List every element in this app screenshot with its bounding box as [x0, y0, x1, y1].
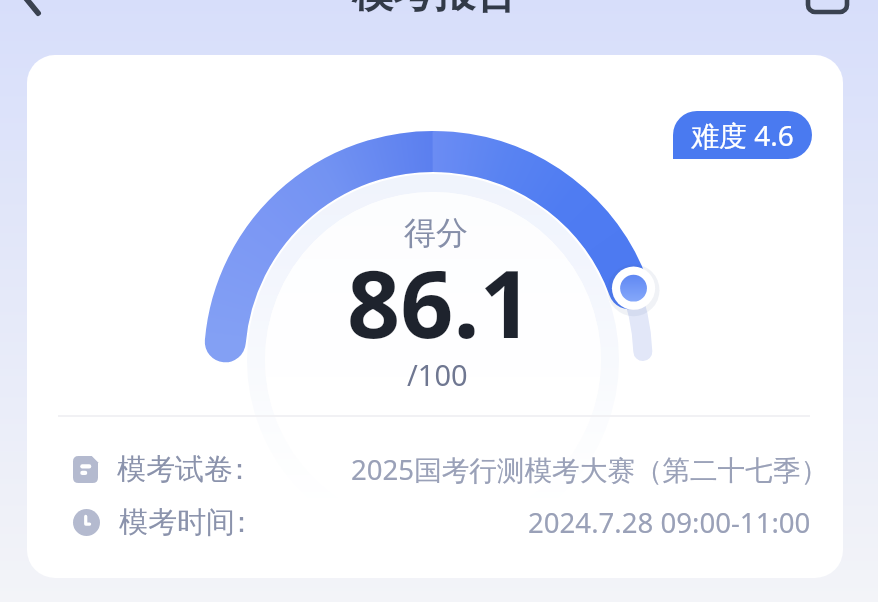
staticText: 86.1	[347, 239, 533, 366]
staticText: 得分	[404, 213, 468, 253]
staticText: ：	[227, 504, 256, 541]
button[interactable]: Back	[0, 0, 60, 20]
staticText: 模考试卷	[117, 451, 233, 488]
staticText: /100	[407, 355, 468, 394]
staticText: 2025国考行测模考大赛（第二十七季）	[351, 450, 829, 488]
staticText: ：	[225, 451, 254, 488]
staticText: 模考时间	[119, 504, 235, 541]
staticText: 2024.7.28 09:00-11:00	[528, 503, 811, 541]
button[interactable]: 难度 4.6	[673, 111, 812, 159]
staticText: 模考报告	[352, 0, 516, 20]
button[interactable]: Share	[802, 0, 852, 18]
staticText: 难度 4.6	[691, 116, 794, 154]
